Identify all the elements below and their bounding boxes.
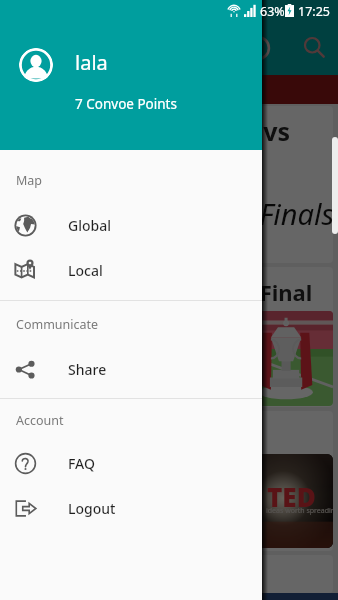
staticText: Map bbox=[16, 172, 43, 189]
staticText: TED bbox=[267, 479, 316, 514]
button[interactable]: FAQ bbox=[0, 441, 262, 486]
staticText: the Finals bbox=[211, 194, 333, 233]
staticText: Account bbox=[16, 412, 64, 429]
button[interactable]: Local bbox=[0, 248, 262, 293]
other: Profile bbox=[245, 35, 271, 61]
staticText: FAQ bbox=[68, 454, 95, 473]
button[interactable]: Global bbox=[0, 203, 262, 248]
staticText: Local bbox=[68, 261, 103, 280]
staticText: Communicate bbox=[16, 316, 99, 333]
staticText: lala bbox=[75, 49, 108, 76]
staticText: Sevilla vs bbox=[177, 114, 291, 148]
staticText: Logout bbox=[68, 499, 116, 518]
other: Search bbox=[303, 36, 325, 58]
staticText: FA Cup Final bbox=[179, 277, 313, 307]
staticText: 63% bbox=[260, 3, 285, 20]
button[interactable]: Share bbox=[0, 347, 262, 392]
staticText: 17:25 bbox=[298, 3, 330, 20]
staticText: ideas worth spreading bbox=[266, 506, 333, 516]
button[interactable]: Logout bbox=[0, 486, 262, 531]
staticText: Share bbox=[68, 360, 107, 379]
staticText: Global bbox=[68, 216, 111, 235]
staticText: 7 Convoe Points bbox=[75, 95, 177, 113]
